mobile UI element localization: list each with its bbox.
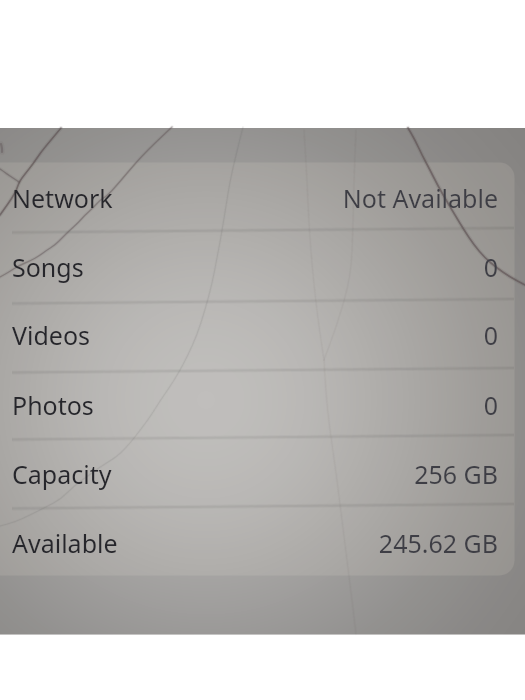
staticText: Network [12,181,113,215]
staticText: 256 GB [0,457,498,491]
staticText: 245.62 GB [0,526,498,560]
staticText: 0 [0,388,498,422]
button[interactable]: Photos [0,371,525,439]
staticText: Songs [12,250,84,284]
staticText: Videos [12,318,91,352]
staticText: Capacity [12,457,112,491]
button[interactable]: Capacity [0,440,525,508]
staticText: 0 [0,250,498,284]
button[interactable]: Songs [0,233,525,301]
staticText: Available [12,526,118,560]
staticText: Not Available [0,181,498,215]
staticText: Photos [12,388,94,422]
button[interactable]: Available [0,509,525,577]
staticText: 0 [0,318,498,352]
button[interactable]: Videos [0,301,525,369]
button[interactable]: Network [0,164,525,232]
